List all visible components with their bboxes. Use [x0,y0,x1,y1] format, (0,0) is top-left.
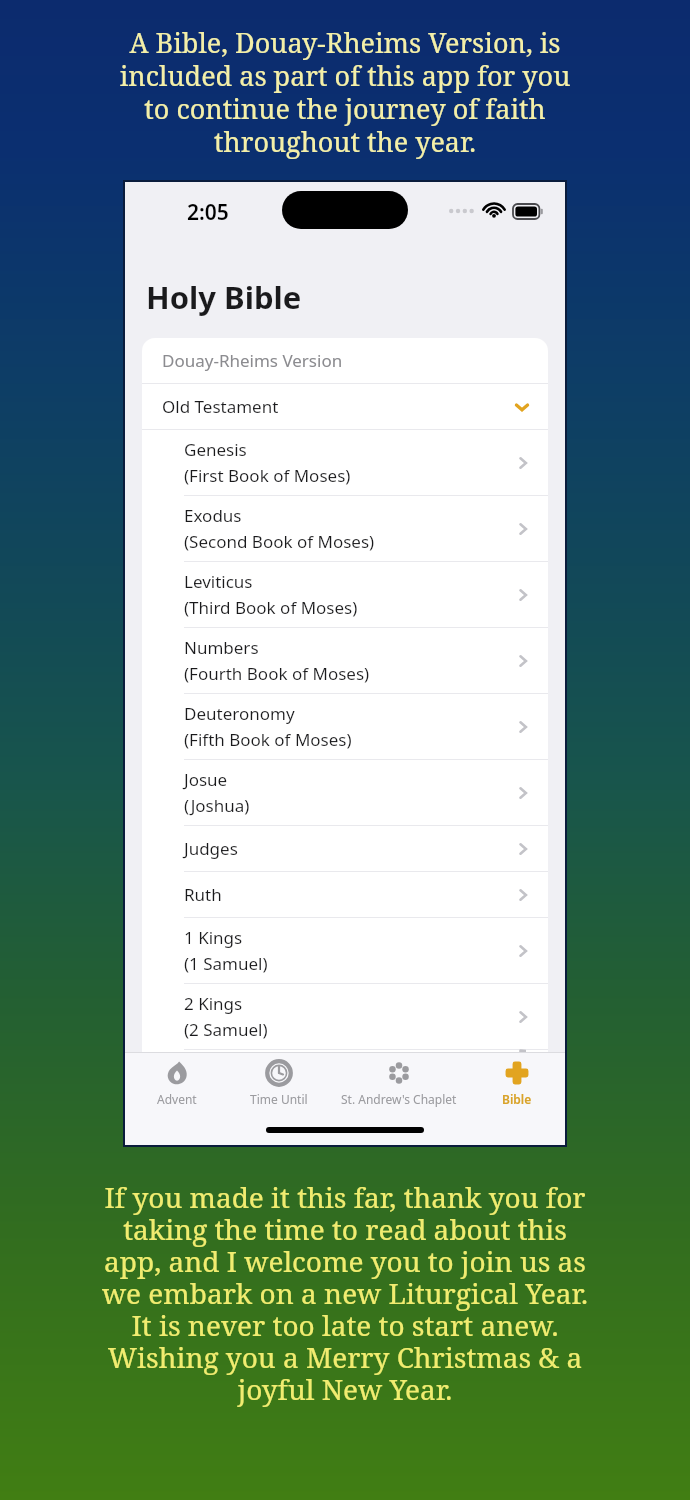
button[interactable]: Ruth [142,872,548,917]
staticText: Judges [184,837,238,860]
staticText: (Joshua) [184,794,250,817]
button[interactable]: Leviticus [142,562,548,627]
staticText: St. Andrew's Chaplet [341,1091,457,1107]
staticText: Bible [502,1091,532,1107]
staticText: (Third Book of Moses) [184,596,358,619]
button[interactable]: Deuteronomy [142,694,548,759]
staticText: 2 Kings [184,992,243,1015]
button[interactable]: Time Until [228,1053,330,1107]
staticText: Time Until [250,1091,308,1107]
button[interactable]: Numbers [142,628,548,693]
staticText: Douay-Rheims Version [162,349,343,372]
staticText: (1 Samuel) [184,952,268,975]
button[interactable]: Old Testament [142,384,548,429]
button[interactable]: 2 Kings [142,984,548,1049]
staticText: (Fifth Book of Moses) [184,728,352,751]
staticText: Numbers [184,636,259,659]
staticText: Holy Bible [146,276,302,318]
staticText: (2 Samuel) [184,1018,268,1041]
button[interactable]: 3 Kings [142,1050,548,1052]
staticText: Ruth [184,883,222,906]
staticText: A Bible, Douay-Rheims Version, is includ… [14,24,676,160]
button[interactable]: Exodus [142,496,548,561]
staticText: Deuteronomy [184,702,295,725]
staticText: Leviticus [184,570,253,593]
button[interactable]: Genesis [142,430,548,495]
staticText: (First Book of Moses) [184,464,351,487]
button[interactable]: Josue [142,760,548,825]
button[interactable]: Advent [125,1053,228,1107]
button[interactable]: St. Andrew's Chaplet [330,1053,468,1107]
button[interactable]: Judges [142,826,548,871]
staticText: If you made it this far, thank you for t… [8,1178,682,1408]
button[interactable]: Bible [468,1053,565,1107]
staticText: Genesis [184,438,247,461]
button[interactable]: 1 Kings [142,918,548,983]
staticText: Josue [184,768,228,791]
staticText: 1 Kings [184,926,243,949]
button[interactable]: Douay-Rheims Version [142,338,548,383]
staticText: Advent [157,1091,197,1107]
staticText: 2:05 [187,198,229,227]
staticText: Exodus [184,504,242,527]
staticText: (Second Book of Moses) [184,530,375,553]
staticText: Old Testament [162,395,512,418]
staticText: (Fourth Book of Moses) [184,662,370,685]
